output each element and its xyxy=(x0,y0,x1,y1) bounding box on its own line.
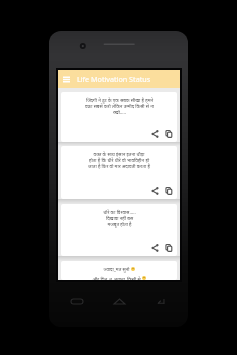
staticText: चोरे का विश्वास..... दिखावा नहीं बस मजबू… xyxy=(103,209,136,227)
staticText: वक्त के साथ इंसान इतना चौड़ा होता है कि … xyxy=(88,151,150,169)
button[interactable]: जिंदगी ने टूट के एक सबक सीखा है हमने वफ़… xyxy=(61,92,177,142)
staticText: जिंदगी ने टूट के एक सबक सीखा है हमने वफ़… xyxy=(85,97,154,115)
button[interactable]: Share xyxy=(149,128,160,139)
button[interactable]: वक्त के साथ इंसान इतना चौड़ा होता है कि … xyxy=(61,146,177,199)
button[interactable]: Share xyxy=(149,242,160,253)
button[interactable]: Copy xyxy=(163,128,174,139)
staticText: ज्यादा_मत सुनो xyxy=(103,266,130,272)
button[interactable]: Home xyxy=(111,295,127,308)
button[interactable]: Copy xyxy=(163,185,174,196)
button[interactable]: Back xyxy=(153,295,169,308)
button[interactable]: ज्यादा_मत सुनो xyxy=(61,261,177,280)
button[interactable]: Open navigation menu xyxy=(60,73,72,85)
staticText: और दिल_न_लगाना_किसी से xyxy=(92,276,141,280)
button[interactable]: Share xyxy=(149,185,160,196)
button[interactable]: चोरे का विश्वास..... दिखावा नहीं बस मजबू… xyxy=(61,204,177,256)
button[interactable]: Recent apps xyxy=(69,295,85,308)
button[interactable]: Copy xyxy=(163,242,174,253)
staticText: Life Motivation Status xyxy=(77,74,151,84)
